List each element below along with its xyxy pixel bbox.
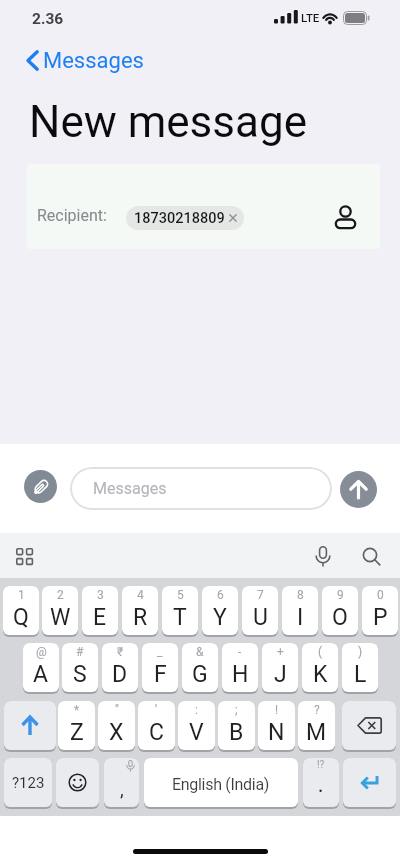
staticText: ' [155, 703, 158, 717]
staticText: M [306, 719, 327, 746]
staticText: E [93, 604, 107, 631]
button[interactable] [340, 471, 377, 508]
staticText: + [277, 645, 284, 659]
staticText: 2.36 [32, 10, 64, 28]
button[interactable]: Messages [70, 467, 332, 510]
button[interactable]: 8 [282, 586, 318, 635]
staticText: G [192, 661, 208, 688]
staticText: B [229, 719, 244, 746]
button[interactable]: + [262, 643, 298, 692]
staticText: X [109, 719, 124, 746]
staticText: P [373, 604, 388, 631]
staticText: ?123 [12, 774, 45, 792]
staticText: Z [70, 719, 84, 746]
button[interactable] [56, 758, 99, 807]
staticText: ? [314, 703, 320, 717]
button[interactable]: !? [303, 758, 339, 807]
button[interactable] [4, 701, 56, 750]
button[interactable]: @ [23, 643, 59, 692]
staticText: 1 [18, 588, 25, 602]
staticText: 9 [337, 588, 344, 602]
button[interactable]: ) [342, 643, 378, 692]
button[interactable]: ' [138, 701, 175, 750]
button[interactable] [356, 541, 386, 571]
staticText: ₹ [117, 645, 124, 659]
button[interactable]: 0 [362, 586, 398, 635]
staticText: 5 [177, 588, 184, 602]
staticText: ( [318, 645, 323, 659]
staticText: V [189, 719, 204, 746]
button[interactable]: 18730218809 [126, 206, 244, 230]
staticText: L [354, 661, 367, 688]
button[interactable]: ; [218, 701, 255, 750]
staticText: I [297, 604, 304, 631]
button[interactable]: 4 [122, 586, 158, 635]
staticText: F [154, 661, 167, 688]
staticText: @ [36, 645, 47, 659]
button[interactable]: 6 [202, 586, 238, 635]
button[interactable]: ( [302, 643, 338, 692]
staticText: K [313, 661, 328, 688]
button[interactable]: - [222, 643, 258, 692]
button[interactable]: & [182, 643, 218, 692]
staticText: S [73, 661, 87, 688]
staticText: N [268, 719, 285, 746]
staticText: English (India) [172, 775, 270, 794]
button[interactable] [24, 470, 57, 503]
staticText: ) [358, 645, 363, 659]
button[interactable]: : [178, 701, 215, 750]
staticText: T [173, 604, 187, 631]
button[interactable]: 1 [3, 586, 39, 635]
staticText: O [332, 604, 348, 631]
staticText: Recipient: [37, 206, 107, 225]
staticText: H [232, 661, 249, 688]
staticText: ! [275, 703, 279, 717]
button[interactable]: ?123 [4, 758, 52, 807]
button[interactable]: English (India) [144, 758, 298, 807]
button[interactable]: 2 [42, 586, 78, 635]
button[interactable] [342, 701, 396, 750]
staticText: # [76, 645, 84, 659]
staticText: Y [213, 604, 227, 631]
staticText: 2 [57, 588, 64, 602]
button[interactable]: ! [258, 701, 295, 750]
button[interactable]: # [62, 643, 98, 692]
staticText: Messages [93, 479, 167, 498]
staticText: ; [235, 703, 238, 717]
staticText: * [74, 703, 80, 717]
button[interactable]: _ [142, 643, 178, 692]
staticText: !? [317, 759, 325, 771]
staticText: 0 [377, 588, 384, 602]
button[interactable] [343, 758, 396, 807]
staticText: A [33, 661, 49, 688]
button[interactable] [328, 200, 362, 234]
staticText: 6 [217, 588, 224, 602]
button[interactable]: ? [298, 701, 335, 750]
button[interactable]: 5 [162, 586, 198, 635]
staticText: 4 [137, 588, 144, 602]
button[interactable]: 7 [242, 586, 278, 635]
staticText: . [318, 774, 324, 796]
staticText: " [115, 703, 119, 717]
staticText: W [50, 604, 71, 631]
button[interactable]: * [58, 701, 95, 750]
button[interactable] [308, 541, 338, 571]
button[interactable]: 3 [82, 586, 118, 635]
button[interactable]: ₹ [102, 643, 138, 692]
staticText: 3 [97, 588, 104, 602]
staticText: LTE [301, 11, 319, 24]
button[interactable] [18, 45, 148, 73]
staticText: & [196, 645, 204, 659]
staticText: J [274, 661, 287, 688]
button[interactable]: 9 [322, 586, 358, 635]
staticText: C [149, 719, 164, 746]
staticText: Messages [43, 48, 144, 74]
staticText: 8 [297, 588, 304, 602]
staticText: R [133, 604, 148, 631]
staticText: New message [29, 96, 308, 148]
button[interactable]: " [98, 701, 135, 750]
button[interactable]: , [104, 758, 139, 807]
button[interactable] [8, 541, 40, 571]
staticText: : [195, 703, 198, 717]
staticText: 18730218809 [134, 210, 225, 227]
